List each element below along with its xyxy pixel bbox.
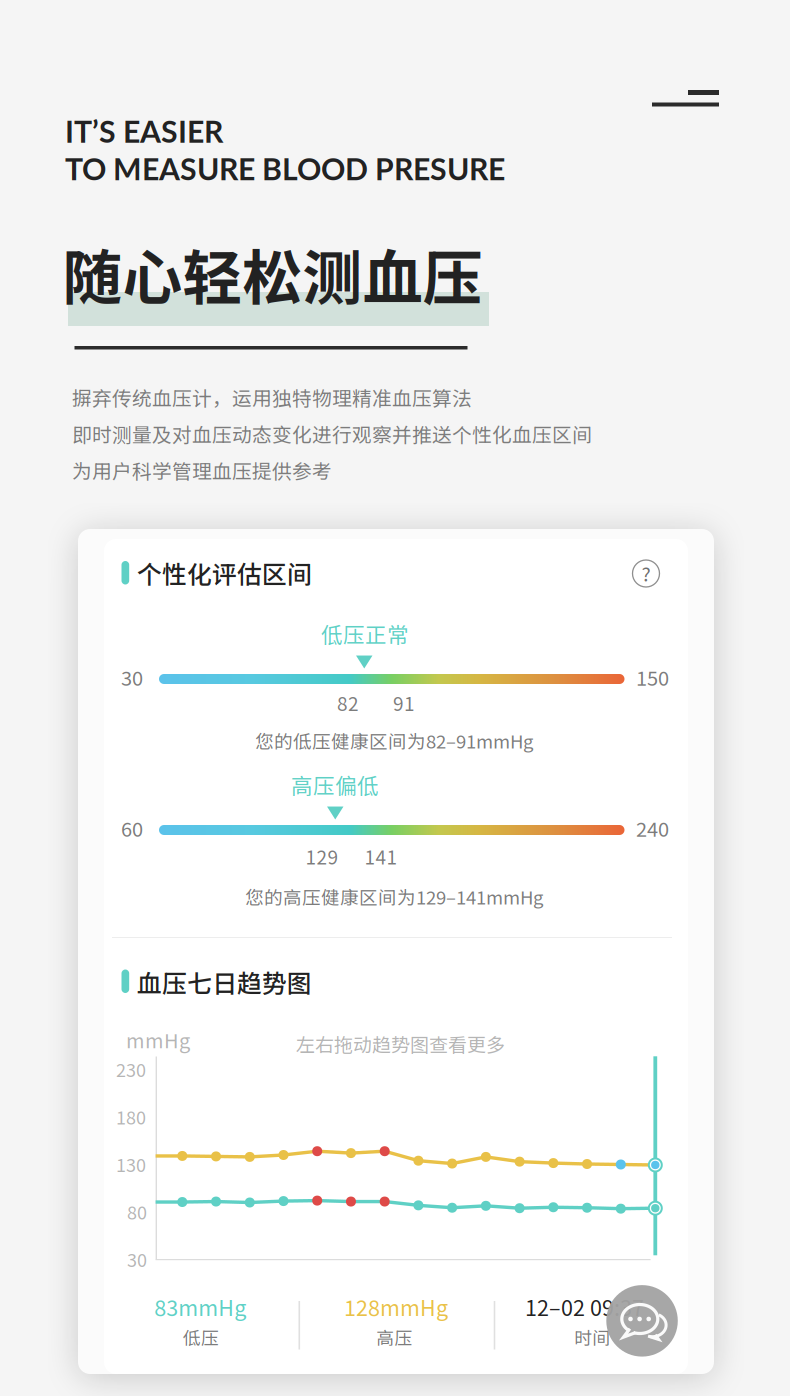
staticText: 低压正常 bbox=[321, 618, 409, 649]
staticText: 180 bbox=[116, 1103, 146, 1130]
staticText: 150 bbox=[636, 662, 669, 691]
staticText: 个性化评估区间 bbox=[137, 555, 312, 591]
staticText: 80 bbox=[127, 1198, 147, 1225]
staticText: 30 bbox=[121, 662, 143, 691]
staticText: 血压七日趋势图 bbox=[137, 964, 312, 1000]
staticText: 为用户科学管理血压提供参考 bbox=[72, 456, 332, 484]
staticText: 高压偏低 bbox=[291, 769, 379, 800]
staticText: 141 bbox=[364, 842, 397, 870]
staticText: 随心轻松测血压 bbox=[62, 230, 482, 317]
staticText: 82 bbox=[337, 689, 359, 716]
staticText: 91 bbox=[393, 689, 415, 716]
button[interactable]: Menu bbox=[652, 84, 719, 101]
staticText: 低压 bbox=[183, 1324, 219, 1350]
staticText: 时间 bbox=[574, 1324, 610, 1350]
button[interactable]: Help bbox=[632, 560, 659, 587]
staticText: 您的低压健康区间为82–91mmHg bbox=[255, 727, 533, 754]
staticText: 60 bbox=[121, 813, 143, 842]
staticText: IT’S EASIER bbox=[65, 113, 223, 149]
staticText: 左右拖动趋势图查看更多 bbox=[296, 1030, 505, 1057]
staticText: 240 bbox=[636, 813, 669, 842]
staticText: 128mmHg bbox=[344, 1291, 448, 1322]
staticText: mmHg bbox=[126, 1025, 190, 1054]
staticText: 83mmHg bbox=[154, 1291, 246, 1322]
staticText: 30 bbox=[127, 1246, 147, 1272]
staticText: ? bbox=[641, 559, 650, 587]
staticText: 130 bbox=[116, 1151, 146, 1177]
staticText: 高压 bbox=[376, 1324, 412, 1350]
button[interactable]: Chat support bbox=[606, 1285, 678, 1357]
staticText: 您的高压健康区间为129–141mmHg bbox=[245, 883, 543, 910]
staticText: TO MEASURE BLOOD PRESURE bbox=[65, 150, 505, 187]
staticText: 12–02 09:37 bbox=[525, 1291, 644, 1322]
staticText: 129 bbox=[305, 842, 338, 870]
staticText: 摒弃传统血压计，运用独特物理精准血压算法 bbox=[72, 383, 472, 411]
staticText: 即时测量及对血压动态变化进行观察并推送个性化血压区间 bbox=[72, 419, 592, 448]
staticText: 230 bbox=[116, 1056, 146, 1082]
